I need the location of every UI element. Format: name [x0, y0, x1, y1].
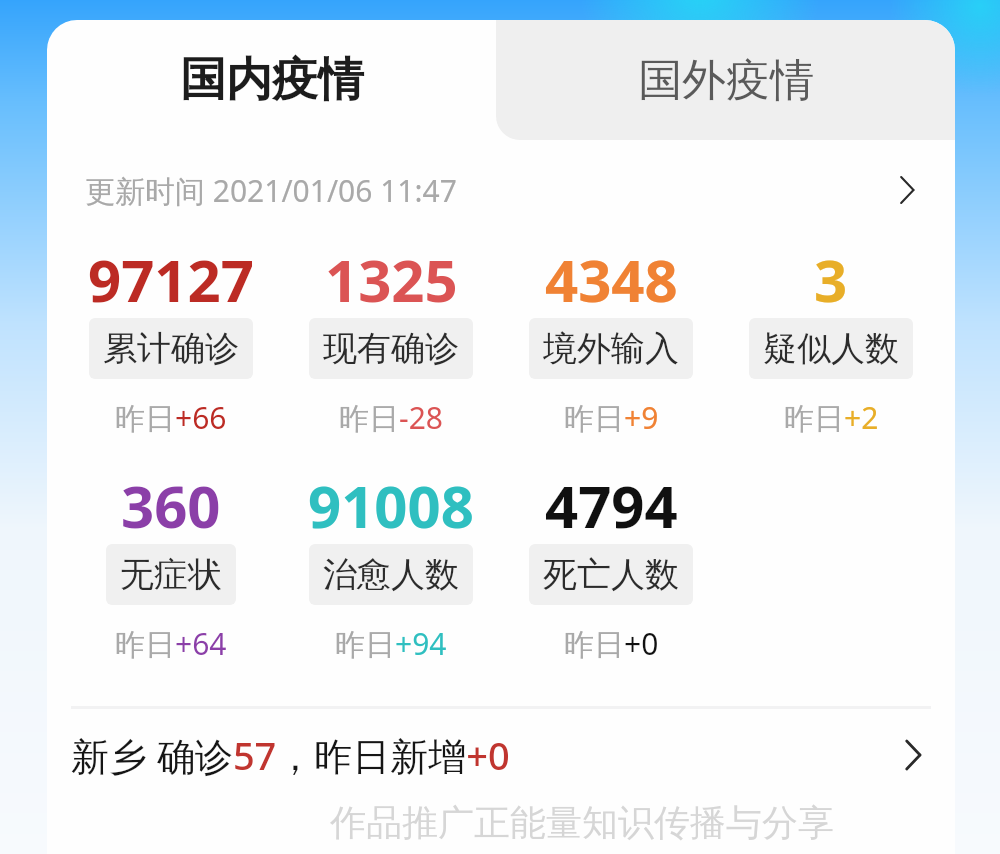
staticText: 1325: [325, 240, 458, 312]
staticText: 国内疫情: [180, 51, 364, 109]
staticText: 昨日+66: [115, 397, 227, 438]
other: 查看详情: [877, 160, 937, 220]
staticText: 国外疫情: [638, 53, 814, 108]
staticText: 累计确诊: [103, 327, 239, 370]
button[interactable]: 4794: [501, 466, 721, 664]
staticText: 昨日+64: [115, 623, 227, 664]
other: 更多城市数据: [885, 727, 941, 783]
staticText: 境外输入: [543, 327, 679, 370]
button[interactable]: 国外疫情: [496, 20, 955, 140]
staticText: 昨日+0: [564, 623, 659, 664]
staticText: 360: [121, 466, 221, 538]
staticText: 昨日-28: [339, 397, 443, 438]
button[interactable]: 新乡 确诊57，昨日新增+0: [47, 709, 955, 801]
staticText: 疑似人数: [763, 327, 899, 370]
staticText: 91008: [308, 466, 474, 538]
staticText: 无症状: [120, 553, 222, 596]
button[interactable]: 91008: [281, 466, 501, 664]
button[interactable]: 97127: [61, 240, 281, 438]
staticText: 死亡人数: [543, 553, 679, 596]
staticText: 更新时间 2021/01/06 11:47: [85, 170, 457, 211]
button[interactable]: 更新时间 2021/01/06 11:47: [47, 140, 955, 240]
button[interactable]: 360: [61, 466, 281, 664]
staticText: 昨日+2: [784, 397, 879, 438]
staticText: 作品推广正能量知识传播与分享: [330, 800, 834, 845]
staticText: 现有确诊: [323, 327, 459, 370]
button[interactable]: 3: [721, 240, 941, 438]
staticText: 新乡 确诊57，昨日新增+0: [71, 729, 510, 781]
staticText: 4348: [545, 240, 678, 312]
button[interactable]: 国内疫情: [47, 20, 496, 140]
staticText: 昨日+9: [564, 397, 659, 438]
button[interactable]: 1325: [281, 240, 501, 438]
staticText: 3: [814, 240, 848, 312]
staticText: 97127: [88, 240, 254, 312]
staticText: 治愈人数: [323, 553, 459, 596]
staticText: 昨日+94: [335, 623, 447, 664]
staticText: 4794: [545, 466, 678, 538]
button[interactable]: 4348: [501, 240, 721, 438]
